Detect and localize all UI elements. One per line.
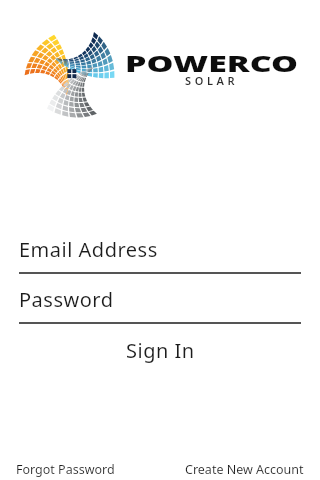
staticText: Sign In [126, 337, 195, 364]
button[interactable]: Sign In [0, 334, 320, 367]
button[interactable]: Password [19, 286, 301, 324]
staticText: POWERCO [125, 47, 299, 79]
staticText: Email Address [19, 236, 158, 263]
staticText: Password [19, 286, 114, 313]
button[interactable]: Forgot Password [16, 458, 115, 480]
button[interactable]: Email Address [19, 236, 301, 274]
staticText: Forgot Password [16, 461, 115, 478]
staticText: SOLAR [185, 73, 239, 88]
button[interactable]: Create New Account [185, 458, 304, 480]
staticText: Create New Account [185, 461, 304, 478]
